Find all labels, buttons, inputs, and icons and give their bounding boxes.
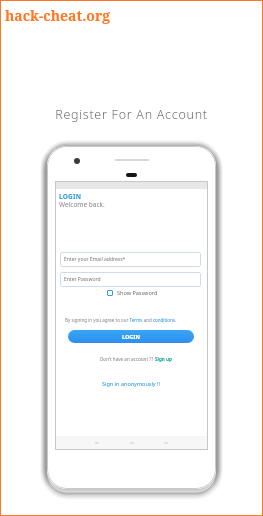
staticText: Enter your Email address*: [64, 256, 126, 263]
staticText: hack-cheat.org: [5, 6, 111, 25]
staticText: Welcome back.: [59, 200, 105, 209]
staticText: Show Password: [117, 289, 158, 296]
button[interactable]: Back: [93, 439, 101, 447]
staticText: LOGIN: [122, 333, 140, 340]
staticText: Sign up: [155, 356, 172, 362]
button[interactable]: Enter your Email address*: [60, 252, 201, 267]
button[interactable]: Show Password: [107, 289, 158, 296]
button[interactable]: Sign in anonymously !!: [102, 380, 161, 387]
button[interactable]: LOGIN: [68, 330, 194, 343]
button[interactable]: Enter Password: [60, 272, 201, 287]
staticText: Enter Password: [64, 276, 101, 283]
button[interactable]: Home: [128, 439, 136, 447]
staticText: LOGIN: [59, 192, 82, 201]
button[interactable]: Recents: [162, 439, 170, 447]
staticText: By signing in you agree to our Terms and…: [65, 317, 177, 323]
staticText: Register For An Account: [0, 106, 263, 123]
staticText: Don't have an account ??: [100, 356, 155, 362]
button[interactable]: Don't have an account ??: [100, 356, 172, 362]
